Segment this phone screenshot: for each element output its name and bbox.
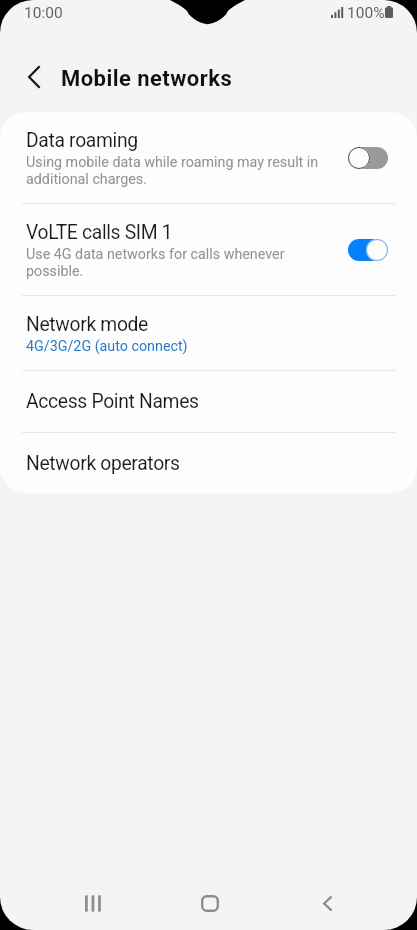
button[interactable]: VoLTE calls SIM 1 <box>0 204 417 295</box>
button[interactable]: Network mode <box>0 296 417 370</box>
staticText: Data roaming <box>26 129 138 152</box>
button[interactable]: On <box>348 239 388 261</box>
staticText: Network operators <box>26 452 180 475</box>
staticText: Mobile networks <box>61 66 233 92</box>
button[interactable]: Home <box>188 886 232 921</box>
button[interactable]: Access Point Names <box>0 371 417 432</box>
button[interactable]: Data roaming <box>0 112 417 203</box>
staticText: 10:00 <box>24 4 63 22</box>
button[interactable]: Off <box>348 147 388 169</box>
staticText: Network mode <box>26 313 149 336</box>
staticText: Access Point Names <box>26 390 199 413</box>
button[interactable]: Network operators <box>0 433 417 493</box>
staticText: VoLTE calls SIM 1 <box>26 221 173 244</box>
button[interactable]: Back <box>305 886 349 921</box>
staticText: Use 4G data networks for calls whenever … <box>26 246 285 280</box>
button[interactable]: Navigate up <box>14 57 54 97</box>
staticText: 100% <box>347 4 385 22</box>
button[interactable]: Recent apps <box>71 886 115 921</box>
staticText: 4G/3G/2G (auto connect) <box>26 338 188 355</box>
staticText: Using mobile data while roaming may resu… <box>26 154 319 188</box>
